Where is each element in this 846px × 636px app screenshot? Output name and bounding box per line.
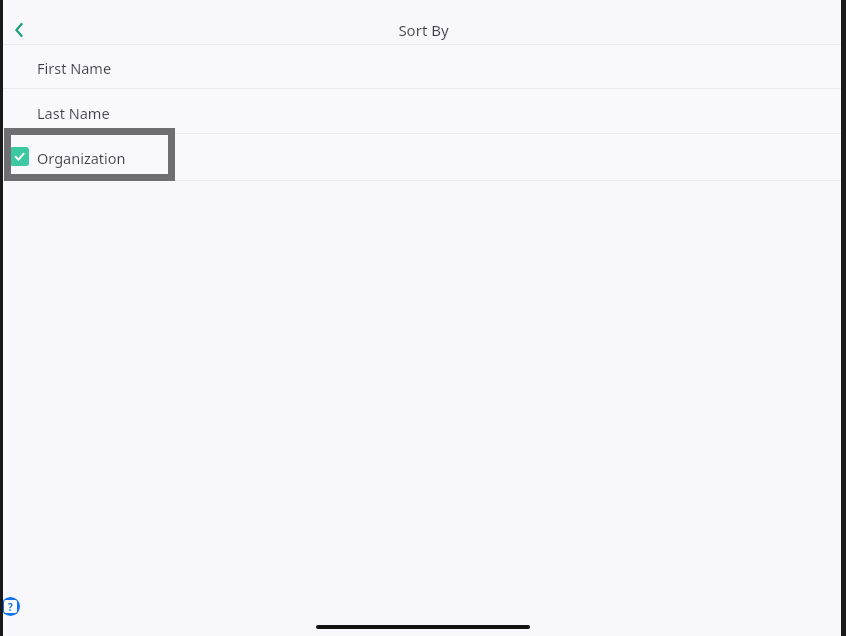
staticText: Organization (37, 148, 126, 168)
staticText: Sort By (398, 20, 449, 40)
button[interactable]: Help (1, 597, 20, 616)
button[interactable]: First Name (3, 45, 841, 88)
staticText: ? (8, 600, 13, 613)
button[interactable]: Organization (3, 134, 841, 180)
staticText: First Name (37, 58, 112, 78)
button[interactable]: Back (2, 12, 38, 48)
staticText: Last Name (37, 103, 110, 123)
button[interactable]: Last Name (3, 89, 841, 133)
